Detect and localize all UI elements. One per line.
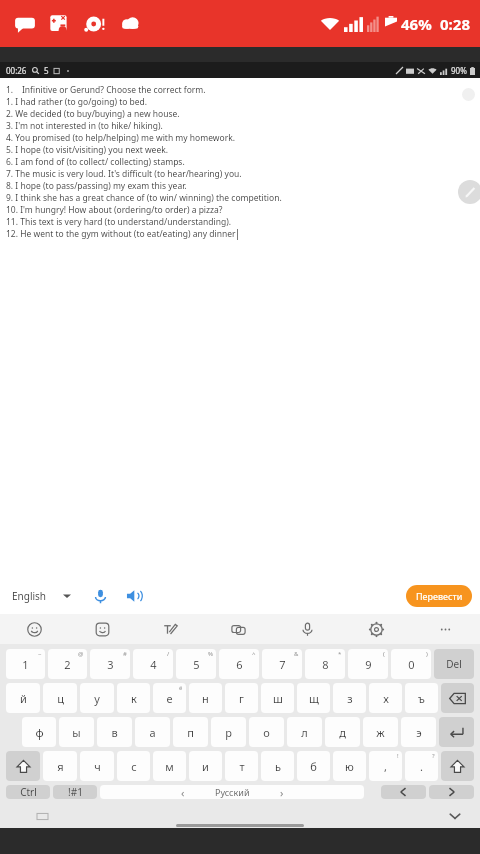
button[interactable]: р (211, 717, 246, 747)
button[interactable]: enter (439, 717, 474, 747)
staticText: п (187, 725, 194, 740)
staticText: 4 (150, 657, 157, 672)
button[interactable]: у (80, 683, 114, 713)
button[interactable]: ь (261, 751, 294, 781)
staticText: 2 (64, 657, 71, 672)
button[interactable]: Handwriting (136, 614, 204, 644)
button[interactable]: к (117, 683, 150, 713)
button[interactable]: 7 (262, 649, 302, 679)
staticText: 3. I'm not interested in (to hike/ hikin… (6, 120, 163, 132)
button[interactable]: ю (333, 751, 366, 781)
button[interactable]: 8 (305, 649, 345, 679)
button[interactable]: More (411, 614, 480, 644)
staticText: 11. This text is very hard (to understan… (6, 216, 232, 228)
button[interactable]: , (369, 751, 402, 781)
staticText: Ctrl (20, 785, 37, 799)
button[interactable]: ш (261, 683, 294, 713)
staticText: ц (57, 691, 64, 706)
staticText: 9 (365, 657, 372, 672)
button[interactable]: я (43, 751, 77, 781)
button[interactable]: ъ (405, 683, 438, 713)
staticText: Del (446, 657, 462, 671)
button[interactable]: й (6, 683, 40, 713)
button[interactable]: т (225, 751, 258, 781)
button[interactable]: ц (43, 683, 77, 713)
staticText: щ (309, 691, 319, 706)
button[interactable]: о (249, 717, 284, 747)
staticText: 0 (408, 657, 415, 672)
button[interactable]: backspace (441, 683, 474, 713)
staticText: 1. Infinitive or Gerund? Choose the corr… (6, 84, 206, 96)
staticText: 90% (451, 65, 467, 76)
button[interactable]: 4 (133, 649, 173, 679)
button[interactable]: 9 (348, 649, 388, 679)
staticText: 6 (236, 657, 243, 672)
staticText: 5 (193, 657, 200, 672)
button[interactable]: 6 (219, 649, 259, 679)
button[interactable]: 3 (90, 649, 130, 679)
button[interactable]: с (117, 751, 150, 781)
button[interactable]: п (173, 717, 208, 747)
button[interactable]: ы (59, 717, 94, 747)
button[interactable]: з (333, 683, 366, 713)
staticText: 10. I'm hungry! How about (ordering/to o… (6, 204, 223, 216)
button[interactable]: Перевести (406, 585, 472, 607)
button[interactable]: б (297, 751, 330, 781)
button[interactable]: English (12, 585, 71, 607)
button[interactable]: и (189, 751, 222, 781)
button[interactable]: 0 (391, 649, 431, 679)
button[interactable]: . (405, 751, 438, 781)
button[interactable]: 1 (6, 649, 45, 679)
staticText: . (420, 759, 423, 774)
staticText: и (202, 759, 209, 774)
button[interactable]: shift (441, 751, 474, 781)
button[interactable]: ж (363, 717, 398, 747)
staticText: 7. The music is very loud. It's difficul… (6, 168, 242, 180)
button[interactable]: right (429, 785, 474, 799)
button[interactable]: м (153, 751, 186, 781)
button[interactable]: Stickers (68, 614, 136, 644)
button[interactable]: э (401, 717, 436, 747)
staticText: Перевести (416, 590, 463, 602)
button[interactable]: Hide keyboard (446, 807, 464, 825)
staticText: л (301, 725, 308, 740)
staticText: н (202, 691, 209, 706)
button[interactable]: л (287, 717, 322, 747)
button[interactable]: Keyboard layout (36, 810, 48, 822)
button[interactable]: 2 (48, 649, 87, 679)
button[interactable]: щ (297, 683, 330, 713)
staticText: % (208, 650, 213, 658)
staticText: ш (273, 691, 283, 706)
button[interactable]: Settings (342, 614, 411, 644)
button[interactable]: д (325, 717, 360, 747)
button[interactable]: г (225, 683, 258, 713)
button[interactable]: ф (22, 717, 56, 747)
button[interactable]: е (153, 683, 186, 713)
button[interactable]: в (97, 717, 132, 747)
staticText: ю (345, 759, 354, 774)
staticText: ~ (38, 650, 42, 658)
staticText: 8. I hope (to pass/passing) my exam this… (6, 180, 187, 192)
button[interactable]: ч (80, 751, 114, 781)
staticText: 7 (279, 657, 286, 672)
button[interactable]: 5 (176, 649, 216, 679)
staticText: English (12, 589, 47, 603)
button[interactable]: Speak (121, 583, 147, 609)
button[interactable]: shift (6, 751, 40, 781)
staticText: у (94, 691, 100, 706)
button[interactable]: !#1 (53, 785, 97, 799)
button[interactable]: Voice (273, 614, 342, 644)
button[interactable]: left (381, 785, 426, 799)
button[interactable]: Del (434, 649, 474, 679)
button[interactable]: Clipboard (204, 614, 273, 644)
button[interactable]: х (369, 683, 402, 713)
button[interactable]: н (189, 683, 222, 713)
staticText: к (131, 691, 137, 706)
staticText: 8 (322, 657, 329, 672)
button[interactable]: ‹ (100, 785, 364, 799)
button[interactable]: Edit (458, 180, 480, 204)
button[interactable]: а (135, 717, 170, 747)
button[interactable]: Voice input (87, 583, 113, 609)
button[interactable]: Emoji (0, 614, 68, 644)
button[interactable]: Ctrl (6, 785, 50, 799)
